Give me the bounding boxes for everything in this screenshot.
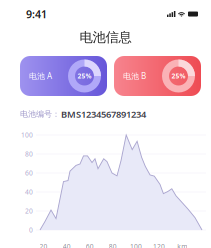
staticText: 100: [130, 242, 142, 248]
staticText: 80: [109, 242, 117, 248]
staticText: 60: [86, 242, 94, 248]
button[interactable]: 电池 B: [114, 56, 201, 96]
staticText: BMS1234567891234: [61, 108, 146, 120]
staticText: 40: [63, 242, 71, 248]
staticText: 120: [153, 242, 165, 248]
staticText: 20: [39, 242, 47, 248]
staticText: 25%: [171, 72, 185, 80]
staticText: 25%: [77, 72, 91, 80]
button[interactable]: 电池 A: [20, 56, 107, 96]
staticText: 40: [25, 188, 33, 196]
staticText: 电池 A: [29, 71, 52, 81]
staticText: km: [177, 242, 187, 248]
staticText: 20: [25, 207, 33, 215]
staticText: 9:41: [26, 7, 47, 21]
staticText: 100: [21, 131, 33, 139]
staticText: 80: [25, 150, 33, 158]
staticText: 电池 B: [123, 71, 146, 81]
staticText: 0: [29, 226, 33, 234]
staticText: 电池信息: [79, 29, 131, 45]
staticText: 60: [25, 169, 33, 177]
staticText: 电池编号：: [20, 109, 60, 119]
